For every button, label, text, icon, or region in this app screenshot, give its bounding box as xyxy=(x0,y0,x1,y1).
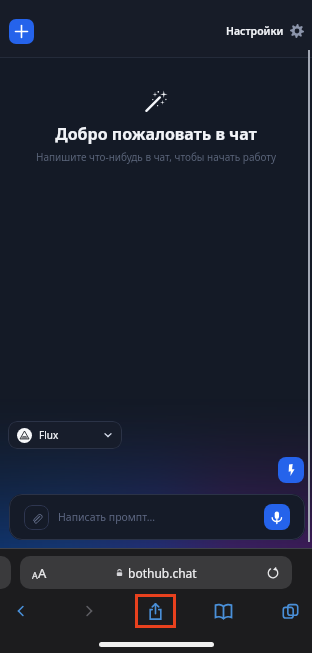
staticText: Напишите что-нибудь в чат, чтобы начать … xyxy=(36,150,276,164)
button[interactable]: Forward xyxy=(71,594,107,628)
staticText: Настройки xyxy=(226,24,284,38)
staticText: A xyxy=(32,569,38,581)
staticText: Написать промпт... xyxy=(58,510,156,524)
button[interactable]: Share xyxy=(135,594,176,628)
staticText: Flux xyxy=(39,428,59,442)
button[interactable]: New chat xyxy=(9,19,34,44)
button[interactable]: A xyxy=(20,556,292,589)
button[interactable]: Tabs xyxy=(272,594,308,628)
button[interactable]: Настройки xyxy=(220,18,308,44)
staticText: bothub.chat xyxy=(128,565,197,581)
button[interactable]: Voice input xyxy=(264,504,290,530)
button[interactable]: Back xyxy=(3,594,39,628)
staticText: A xyxy=(38,564,47,582)
button[interactable]: Bookmarks xyxy=(205,594,241,628)
button[interactable]: Quick actions xyxy=(278,457,304,483)
staticText: Добро пожаловать в чат xyxy=(55,123,257,145)
button[interactable]: Flux xyxy=(8,421,122,449)
button[interactable]: Attach file xyxy=(24,505,49,530)
